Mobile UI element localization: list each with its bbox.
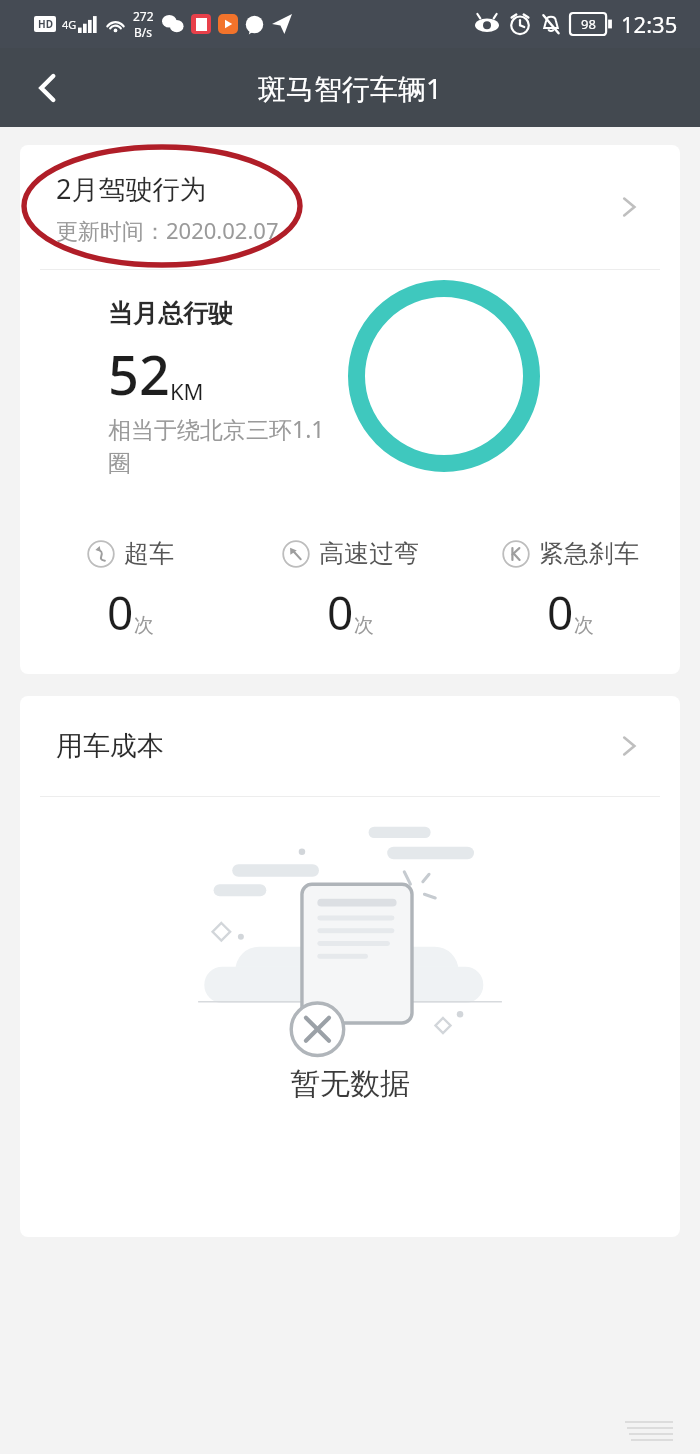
staticText: 用车成本 — [56, 729, 614, 763]
staticText: 相当于绕北京三环1.1圈 — [108, 413, 333, 478]
staticText: 高速过弯 — [319, 538, 419, 569]
staticText: 52 — [108, 337, 170, 411]
staticText: 0 — [327, 581, 354, 644]
staticText: 272 — [133, 8, 154, 24]
staticText: 当月总行驶 — [108, 298, 233, 329]
staticText: 次 — [354, 613, 374, 638]
staticText: 超车 — [124, 538, 174, 569]
staticText: B/s — [134, 24, 153, 40]
staticText: KM — [170, 376, 204, 406]
button[interactable]: 2月驾驶行为 — [20, 145, 680, 269]
staticText: 0 — [107, 581, 134, 644]
staticText: 0 — [547, 581, 574, 644]
staticText: 2月驾驶行为 — [56, 170, 207, 207]
staticText: 次 — [134, 613, 154, 638]
button[interactable]: Back — [0, 48, 96, 127]
staticText: 暂无数据 — [290, 1065, 410, 1103]
staticText: 98 — [581, 15, 596, 33]
staticText: 紧急刹车 — [539, 538, 639, 569]
staticText: 次 — [574, 613, 594, 638]
button[interactable]: 用车成本 — [20, 696, 680, 796]
staticText: HD — [38, 17, 53, 31]
staticText: 4G — [62, 17, 77, 32]
staticText: 斑马智行车辆1 — [258, 69, 443, 107]
staticText: 12:35 — [621, 9, 678, 39]
staticText: 更新时间：2020.02.07 — [56, 215, 279, 245]
